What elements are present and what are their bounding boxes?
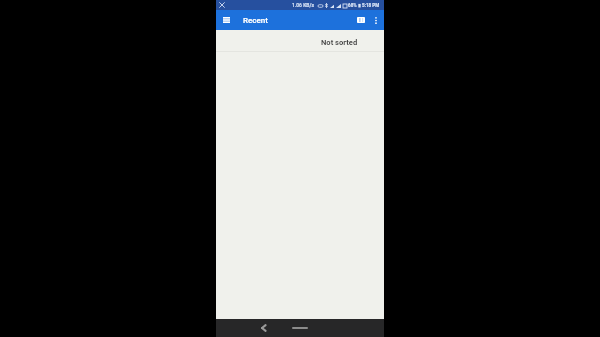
button[interactable]: Back (254, 319, 272, 337)
button[interactable]: More options (368, 12, 384, 28)
staticText: 1.06 KB/s (292, 2, 315, 8)
staticText: 5:18 PM (362, 3, 380, 8)
button[interactable]: Open navigation drawer (218, 12, 234, 28)
button[interactable]: Not sorted (216, 30, 384, 51)
button[interactable]: Change view (353, 12, 369, 28)
staticText: Not sorted (321, 38, 358, 47)
staticText: 68% (348, 3, 357, 8)
staticText: Recent (243, 16, 268, 25)
button[interactable]: Home (286, 319, 314, 337)
